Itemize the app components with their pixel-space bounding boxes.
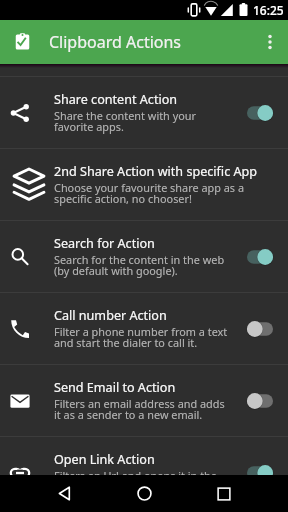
button[interactable]: Recent apps xyxy=(204,475,244,512)
staticText: Share the content with your favorite app… xyxy=(54,108,197,134)
button[interactable]: Open Link Action xyxy=(0,437,288,508)
button[interactable]: Share content Action xyxy=(0,77,288,148)
staticText: 2nd Share Action with specific App xyxy=(54,163,258,180)
button[interactable]: 2nd Share Action with specific App xyxy=(0,149,288,220)
staticText: Filter a phone number from a text and st… xyxy=(54,324,228,350)
button[interactable]: Send Email to Action xyxy=(0,365,288,436)
button[interactable]: Home xyxy=(124,475,164,512)
staticText: Send Email to Action xyxy=(54,379,176,396)
staticText: Filters an email address and adds it as … xyxy=(54,396,225,422)
staticText: Share content Action xyxy=(54,91,178,108)
button[interactable]: Back xyxy=(44,475,84,512)
button[interactable]: Search for Action xyxy=(0,221,288,292)
staticText: Search for the content in the web (by de… xyxy=(54,252,225,278)
staticText: Open Link Action xyxy=(54,451,155,468)
staticText: 16:25 xyxy=(253,2,284,18)
staticText: Search for Action xyxy=(54,235,155,252)
button[interactable]: Disable Search for Action xyxy=(244,245,276,269)
button[interactable]: Disable Open Link Action xyxy=(244,461,276,485)
staticText: Call number Action xyxy=(54,307,167,324)
staticText: Choose your favourite share app as a spe… xyxy=(54,180,245,206)
staticText: Filters an Url and opens it in the brows… xyxy=(54,468,217,494)
button[interactable]: Disable Share content Action xyxy=(244,101,276,125)
button[interactable]: More options xyxy=(252,24,288,60)
staticText: Clipboard Actions xyxy=(49,31,182,53)
button[interactable]: Enable Send Email to Action xyxy=(244,389,276,413)
button[interactable]: Call number Action xyxy=(0,293,288,364)
button[interactable]: Enable Call number Action xyxy=(244,317,276,341)
